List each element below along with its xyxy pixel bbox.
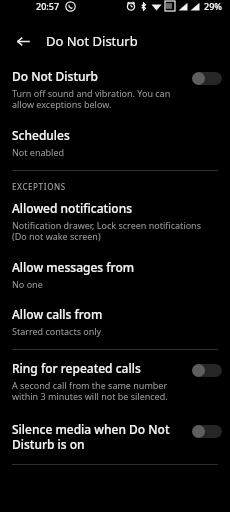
staticText: Ring for repeated calls [12, 360, 141, 376]
button[interactable]: Allow calls from [0, 302, 230, 349]
staticText: Allow calls from [12, 306, 103, 322]
button[interactable]: Schedules [0, 121, 230, 170]
staticText: No one [12, 278, 43, 290]
staticText: Do Not Disturb [12, 68, 99, 84]
button[interactable]: Back [10, 28, 36, 54]
staticText: 29% [204, 0, 222, 12]
button[interactable]: Toggle [192, 423, 222, 439]
button[interactable]: Toggle [192, 362, 222, 378]
staticText: Starred contacts only [12, 325, 102, 337]
staticText: EXCEPTIONS [12, 181, 66, 192]
staticText: 20:57 [36, 0, 60, 12]
staticText: Not enabled [12, 146, 65, 158]
button[interactable]: Silence media when Do Not Disturb is on [0, 413, 230, 464]
staticText: Notification drawer, Lock screen notific… [12, 219, 218, 243]
staticText: Allow messages from [12, 259, 135, 275]
button[interactable]: Allowed notifications [0, 198, 230, 253]
staticText: A second call from the same number withi… [12, 379, 184, 403]
button[interactable]: Do Not Disturb [0, 64, 230, 121]
staticText: Turn off sound and vibration. You can al… [12, 87, 184, 111]
button[interactable]: Allow messages from [0, 253, 230, 302]
staticText: Allowed notifications [12, 200, 133, 216]
staticText: Schedules [12, 127, 70, 143]
button[interactable]: Ring for repeated calls [0, 350, 230, 413]
button[interactable]: Toggle [192, 70, 222, 86]
staticText: Silence media when Do Not Disturb is on [12, 421, 184, 452]
staticText: Do Not Disturb [46, 32, 138, 50]
